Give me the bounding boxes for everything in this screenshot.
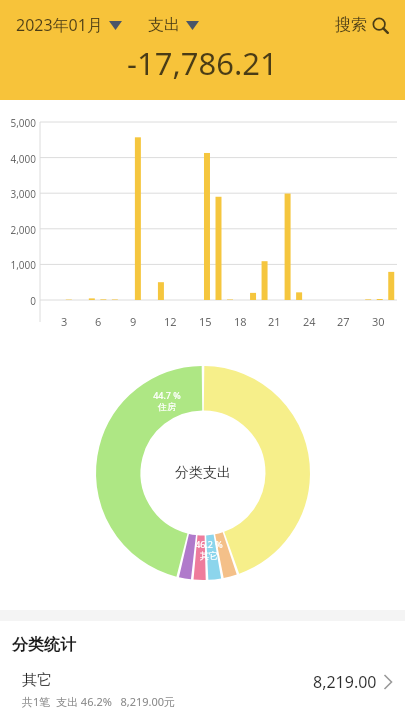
staticText: 12 <box>164 314 177 329</box>
staticText: 其它 <box>22 671 52 690</box>
staticText: 8,219.00 <box>313 671 377 693</box>
button[interactable]: 搜索 <box>333 11 391 39</box>
staticText: 30 <box>372 314 385 329</box>
staticText: 27 <box>337 314 350 329</box>
staticText: 3,000 <box>0 187 36 201</box>
staticText: 4,000 <box>0 152 36 166</box>
staticText: 3 <box>61 314 68 329</box>
staticText: 搜索 <box>335 15 367 35</box>
staticText: 46.2 % 其它 <box>195 538 223 562</box>
button[interactable]: 其它 <box>0 661 405 715</box>
staticText: -17,786.21 <box>127 42 278 84</box>
staticText: 15 <box>199 314 212 329</box>
other: Search <box>372 17 389 34</box>
staticText: 分类支出 <box>175 464 231 482</box>
staticText: 18 <box>234 314 247 329</box>
button[interactable]: 支出 <box>146 11 201 39</box>
staticText: 支出 <box>148 15 180 35</box>
staticText: 分类统计 <box>12 635 76 655</box>
staticText: 6 <box>95 314 102 329</box>
staticText: 共1笔 支出 46.2% 8,219.00元 <box>22 694 176 709</box>
staticText: 21 <box>268 314 281 329</box>
staticText: 9 <box>130 314 137 329</box>
staticText: 0 <box>0 294 36 308</box>
staticText: 24 <box>303 314 316 329</box>
staticText: 44.7 % 住房 <box>153 389 181 413</box>
staticText: 1,000 <box>0 258 36 272</box>
staticText: 2023年01月 <box>16 14 103 36</box>
staticText: 5,000 <box>0 116 36 130</box>
button[interactable]: 2023年01月 <box>14 10 124 40</box>
staticText: 2,000 <box>0 223 36 237</box>
